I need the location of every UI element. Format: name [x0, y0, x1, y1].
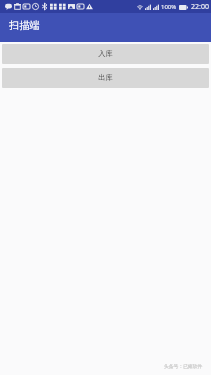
button[interactable]: 出库: [2, 68, 209, 88]
button[interactable]: 入库: [2, 44, 209, 64]
staticText: 出库: [98, 73, 113, 82]
staticText: 22:00: [191, 2, 209, 12]
staticText: 入库: [98, 49, 113, 58]
staticText: 扫描端: [9, 19, 40, 32]
staticText: 100%: [161, 3, 177, 11]
staticText: 头条号：已瘫软件: [164, 363, 203, 369]
